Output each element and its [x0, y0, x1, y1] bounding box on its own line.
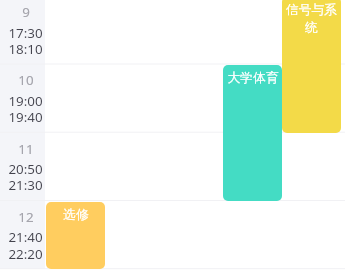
button[interactable]: Period 11, 20:50 to 21:30	[0, 132, 45, 200]
staticText: 17:30	[8, 24, 43, 42]
staticText: 选修	[63, 207, 89, 223]
button[interactable]: Period 12, 21:40 to 22:20	[0, 200, 45, 268]
staticText: 22:20	[8, 245, 43, 263]
staticText: 大学体育	[227, 70, 279, 86]
staticText: 21:40	[8, 228, 43, 246]
button[interactable]: 大学体育	[223, 65, 282, 201]
staticText: 20:50	[8, 160, 43, 178]
staticText: 9	[22, 3, 30, 21]
staticText: 19:00	[8, 92, 43, 110]
button[interactable]: Period 9, 17:30 to 18:10	[0, 0, 45, 64]
staticText: 10	[18, 71, 34, 89]
button[interactable]: Period 10, 19:00 to 19:40	[0, 64, 45, 132]
button[interactable]: 选修	[46, 202, 105, 269]
staticText: 18:10	[8, 40, 43, 58]
staticText: 19:40	[8, 108, 43, 126]
staticText: 21:30	[8, 176, 43, 194]
staticText: 12	[18, 208, 34, 226]
staticText: 11	[18, 140, 34, 158]
button[interactable]: 信号与系统	[282, 0, 341, 133]
staticText: 信号与系统	[284, 2, 339, 36]
